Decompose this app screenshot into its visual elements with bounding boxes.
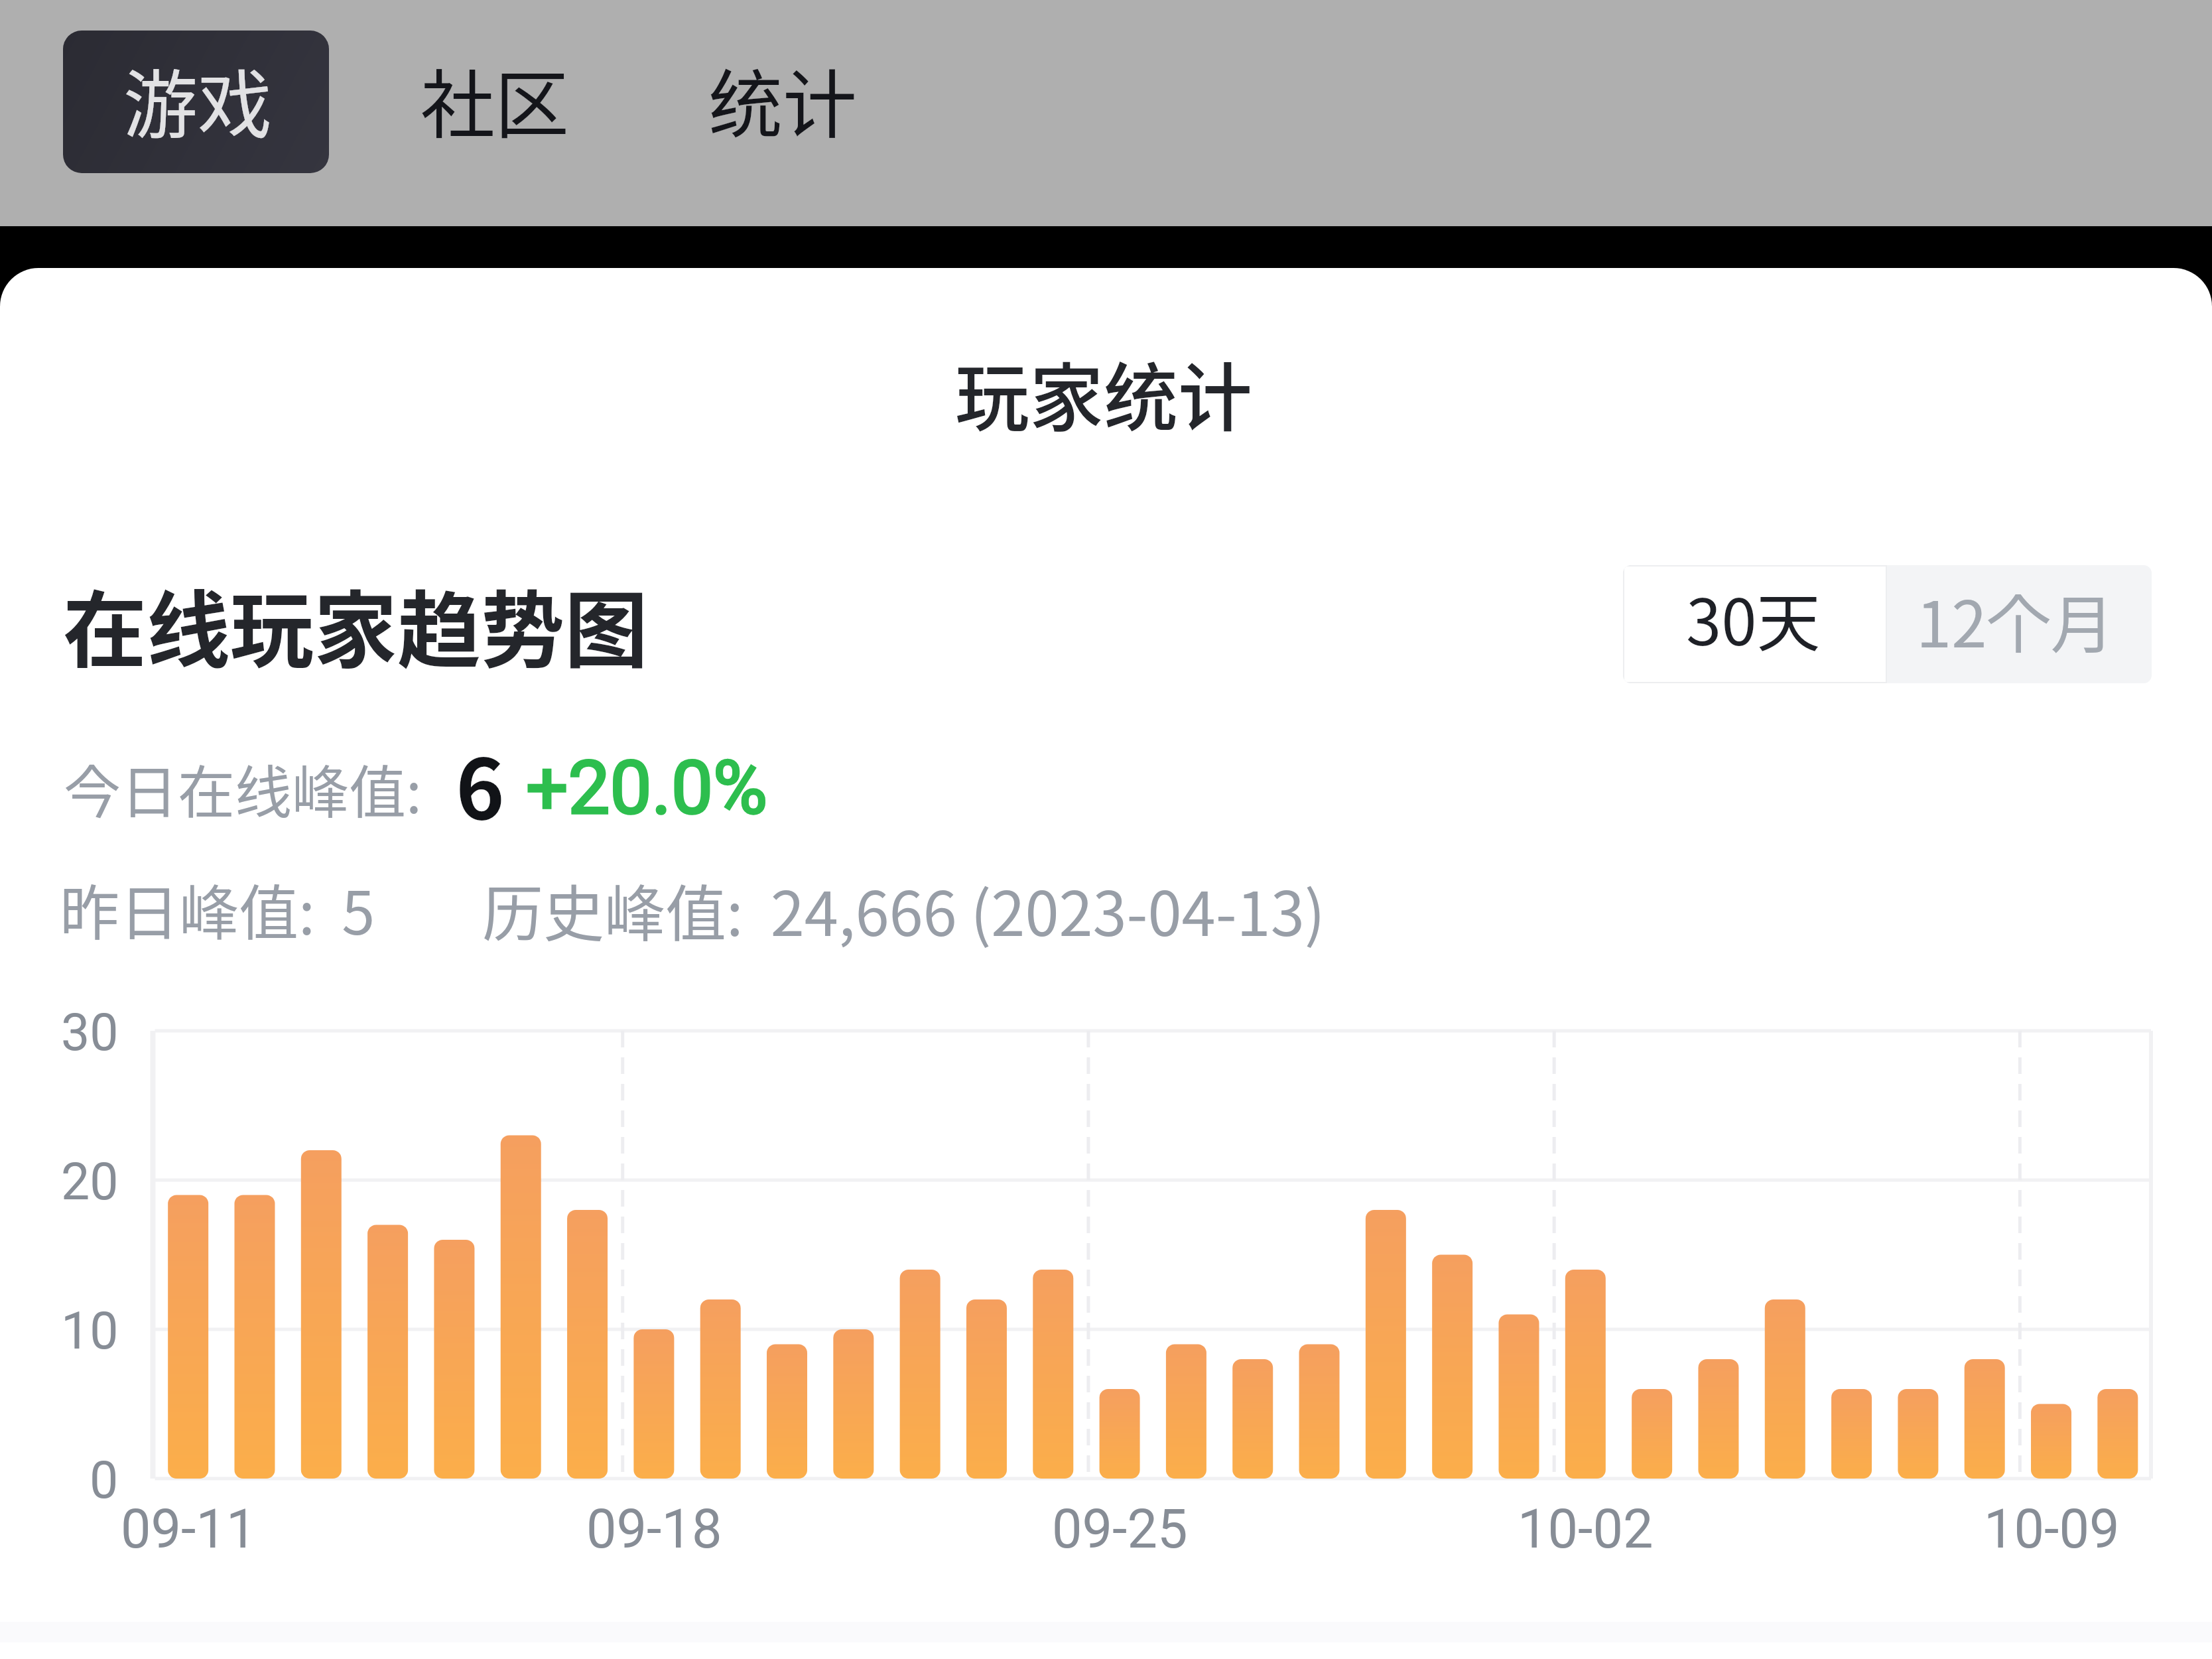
staticText: 游戏 xyxy=(123,46,272,153)
staticText: 社区 xyxy=(421,46,569,153)
staticText: 6 xyxy=(456,723,505,843)
staticText: 历史峰值: 24,666 (2023-04-13) xyxy=(482,865,1325,953)
button[interactable]: 30天 xyxy=(1624,566,1886,682)
staticText: +20.0% xyxy=(526,744,767,831)
staticText: 10-09 xyxy=(1984,1498,2120,1561)
button[interactable]: 统计 xyxy=(688,31,868,173)
button[interactable]: 12个月 xyxy=(1887,565,2152,683)
staticText: 09-11 xyxy=(121,1498,257,1561)
staticText: 10-02 xyxy=(1518,1498,1654,1561)
staticText: 09-25 xyxy=(1052,1498,1188,1561)
staticText: 昨日峰值: 5 xyxy=(60,866,375,952)
staticText: 0 xyxy=(90,1451,119,1510)
staticText: 统计 xyxy=(708,46,857,153)
staticText: 09-18 xyxy=(586,1498,722,1561)
staticText: 12个月 xyxy=(1916,574,2114,666)
staticText: 30 xyxy=(61,1003,119,1063)
staticText: 在线玩家趋势图 xyxy=(63,564,648,685)
staticText: 今日在线峰值: xyxy=(64,747,422,830)
staticText: 玩家统计 xyxy=(955,339,1252,446)
button[interactable]: 社区 xyxy=(400,31,580,173)
button[interactable]: 游戏 xyxy=(63,31,329,173)
staticText: 20 xyxy=(61,1152,119,1212)
staticText: 10 xyxy=(61,1301,119,1361)
staticText: 30天 xyxy=(1686,572,1821,664)
